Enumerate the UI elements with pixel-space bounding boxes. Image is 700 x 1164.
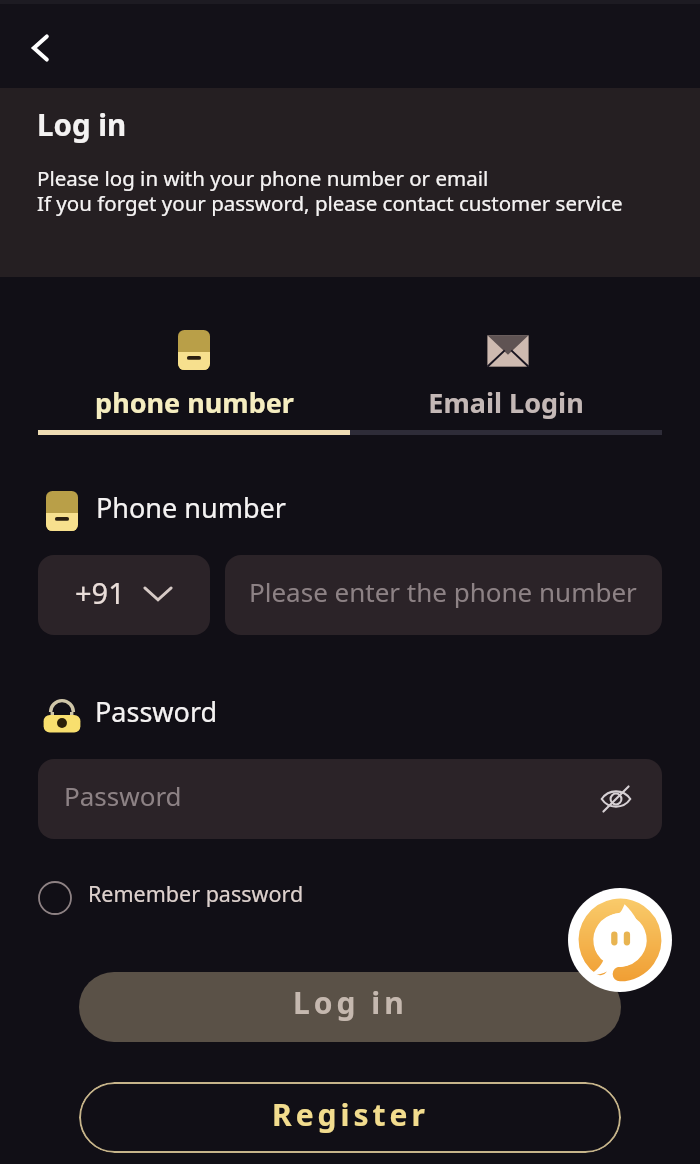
- staticText: Please enter the phone number: [249, 574, 637, 609]
- staticText: Register: [272, 1094, 429, 1135]
- staticText: phone number: [95, 384, 294, 421]
- button[interactable]: Remember password: [38, 881, 304, 915]
- staticText: Phone number: [96, 489, 286, 526]
- button[interactable]: Log in: [79, 972, 621, 1042]
- button[interactable]: +91: [38, 555, 210, 635]
- staticText: +91: [75, 573, 125, 612]
- button[interactable]: Email Login: [350, 330, 662, 421]
- staticText: Log in: [293, 982, 408, 1023]
- button[interactable]: Show password: [596, 779, 636, 819]
- staticText: Email Login: [428, 384, 584, 421]
- staticText: Password: [95, 693, 218, 730]
- staticText: Log in: [37, 104, 127, 144]
- button[interactable]: Password: [38, 759, 662, 839]
- button[interactable]: Please enter the phone number: [225, 555, 662, 635]
- button[interactable]: Back: [14, 19, 64, 69]
- button[interactable]: phone number: [38, 330, 350, 421]
- staticText: Please log in with your phone number or …: [37, 164, 623, 217]
- button[interactable]: Customer service: [568, 888, 672, 992]
- staticText: Password: [64, 778, 182, 813]
- staticText: Remember password: [88, 879, 304, 908]
- button[interactable]: Register: [79, 1082, 621, 1153]
